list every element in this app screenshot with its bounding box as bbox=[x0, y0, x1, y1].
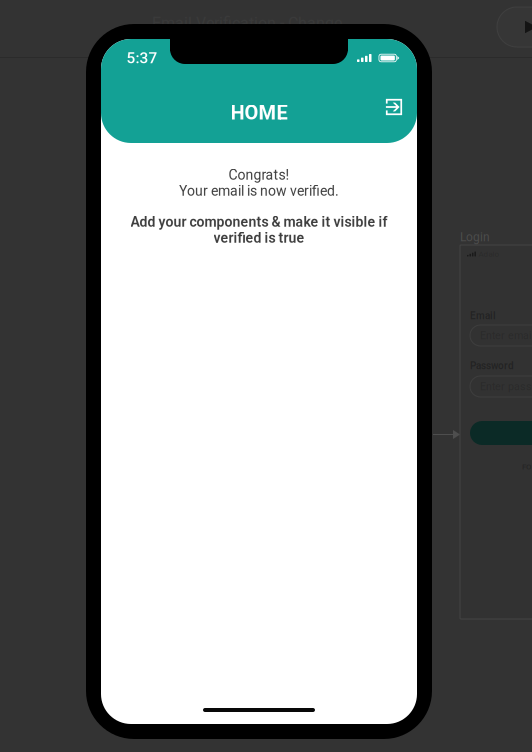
staticText: Congrats! bbox=[228, 167, 289, 183]
staticText: verified is true bbox=[213, 230, 304, 246]
button[interactable]: Preview bbox=[497, 7, 532, 47]
button[interactable]: Log in bbox=[470, 421, 532, 445]
staticText: Login bbox=[460, 230, 490, 244]
button[interactable]: Sign out bbox=[377, 90, 411, 124]
staticText: Email bbox=[470, 310, 496, 322]
staticText: FORGOT PASSWORD? bbox=[522, 462, 532, 471]
staticText: HOME bbox=[230, 101, 287, 124]
staticText: Password bbox=[470, 360, 514, 372]
staticText: Add your components & make it visible if bbox=[130, 214, 387, 230]
staticText: Your email is now verified. bbox=[179, 183, 339, 199]
staticText: 5:37 bbox=[126, 49, 157, 67]
button[interactable]: FORGOT PASSWORD? bbox=[522, 462, 532, 471]
staticText: Email Verification - Change ... bbox=[152, 14, 358, 33]
